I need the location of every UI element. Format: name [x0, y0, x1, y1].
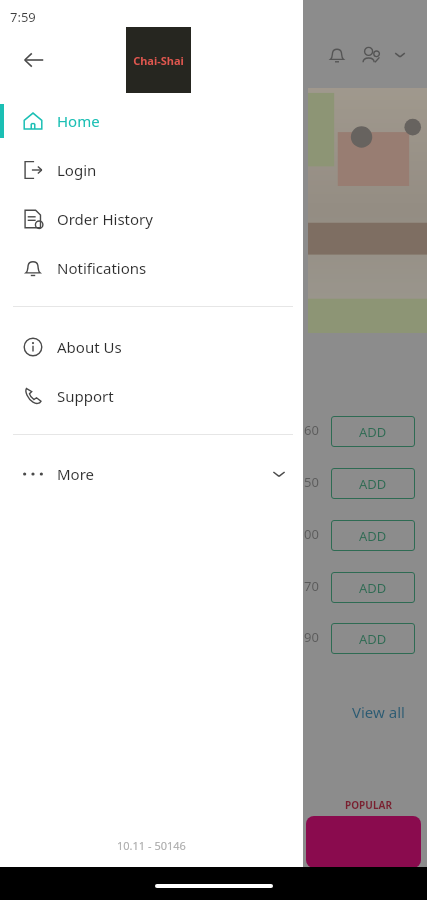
button[interactable]: ADD [331, 416, 415, 447]
staticText: ADD [359, 527, 387, 545]
button[interactable]: View all [352, 702, 405, 722]
staticText: View all [352, 702, 405, 722]
staticText: 70 [304, 577, 319, 595]
staticText: ADD [359, 423, 387, 441]
button[interactable]: Expand [388, 43, 412, 67]
staticText: Home [57, 111, 100, 131]
staticText: Login [57, 160, 97, 180]
staticText: Chai-Shai [133, 53, 184, 68]
staticText: About Us [57, 337, 122, 357]
staticText: Support [57, 386, 114, 406]
button[interactable]: Order History [0, 202, 303, 236]
button[interactable]: ADD [331, 520, 415, 551]
staticText: ADD [359, 475, 387, 493]
button[interactable]: About Us [0, 330, 303, 364]
staticText: 50 [304, 473, 319, 491]
button[interactable]: More [0, 458, 303, 490]
staticText: ADD [359, 579, 387, 597]
button[interactable]: ADD [331, 468, 415, 499]
staticText: Order History [57, 209, 153, 229]
staticText: 10.11 - 50146 [117, 838, 186, 853]
button[interactable]: Notifications [0, 251, 303, 285]
button[interactable]: Back [14, 40, 54, 80]
staticText: More [57, 464, 95, 484]
button[interactable]: Account [354, 38, 388, 72]
staticText: 7:59 [10, 8, 36, 26]
button[interactable]: ADD [331, 572, 415, 603]
staticText: POPULAR [345, 798, 392, 812]
button[interactable]: ADD [331, 623, 415, 654]
button[interactable]: Login [0, 153, 303, 187]
button[interactable]: Support [0, 379, 303, 413]
staticText: 60 [304, 421, 319, 439]
staticText: Notifications [57, 258, 147, 278]
button[interactable]: Home [0, 104, 303, 138]
staticText: 00 [304, 525, 319, 543]
staticText: ADD [359, 630, 387, 648]
button[interactable]: Chai-Shai [126, 27, 191, 93]
button[interactable]: Notifications [320, 38, 354, 72]
staticText: 90 [304, 628, 319, 646]
button[interactable] [306, 816, 421, 868]
